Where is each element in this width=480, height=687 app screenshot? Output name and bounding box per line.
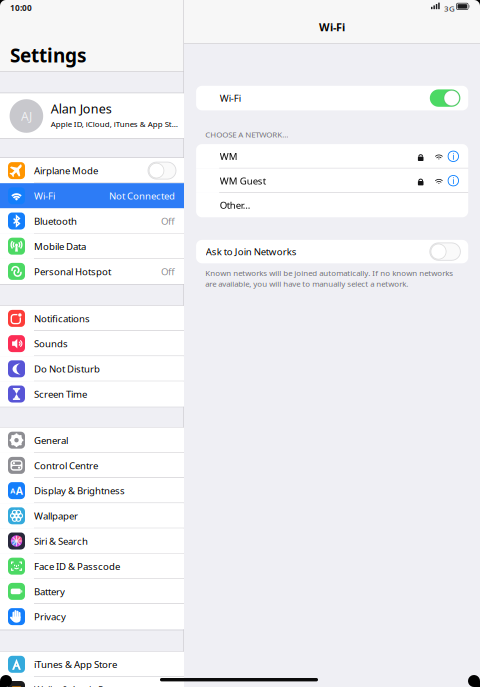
button[interactable]: Control Centre bbox=[0, 453, 184, 478]
staticText: Sounds bbox=[34, 337, 68, 350]
staticText: Wallpaper bbox=[34, 509, 78, 522]
button[interactable]: Mobile Data bbox=[0, 234, 184, 259]
button[interactable]: Ask to Join Networks bbox=[196, 240, 468, 263]
staticText: Siri & Search bbox=[34, 534, 88, 548]
staticText: Ask to Join Networks bbox=[206, 245, 297, 258]
staticText: Display & Brightness bbox=[34, 484, 125, 497]
button[interactable]: Wallpaper bbox=[0, 503, 184, 528]
staticText: Apple ID, iCloud, iTunes & App St… bbox=[51, 118, 178, 129]
button[interactable]: Privacy bbox=[0, 604, 184, 629]
button[interactable]: iTunes & App Store bbox=[0, 652, 184, 677]
staticText: Off bbox=[161, 214, 175, 228]
button[interactable]: Wi-Fi bbox=[0, 183, 184, 208]
button[interactable]: Do Not Disturb bbox=[0, 356, 184, 381]
staticText: iTunes & App Store bbox=[34, 658, 117, 671]
staticText: WM bbox=[220, 150, 238, 163]
staticText: Face ID & Passcode bbox=[34, 560, 120, 573]
staticText: Privacy bbox=[34, 610, 66, 623]
staticText: Other… bbox=[220, 199, 251, 212]
staticText: AJ bbox=[21, 108, 32, 124]
staticText: Do Not Disturb bbox=[34, 362, 100, 375]
staticText: A bbox=[16, 483, 23, 498]
staticText: Control Centre bbox=[34, 459, 98, 472]
staticText: Known networks will be joined automatica… bbox=[205, 267, 453, 289]
staticText: WM Guest bbox=[220, 174, 266, 187]
staticText: Alan Jones bbox=[51, 100, 112, 117]
button[interactable]: Wi-Fi bbox=[196, 86, 468, 110]
staticText: Settings bbox=[10, 42, 87, 68]
staticText: Notifications bbox=[34, 312, 90, 325]
staticText: Battery bbox=[34, 585, 65, 598]
button[interactable]: Siri & Search bbox=[0, 528, 184, 554]
staticText: Bluetooth bbox=[34, 214, 77, 228]
button[interactable]: WM Guest bbox=[196, 168, 468, 193]
staticText: Wi-Fi bbox=[220, 92, 241, 105]
staticText: 10:00 bbox=[10, 2, 32, 13]
button[interactable]: Other… bbox=[196, 193, 468, 217]
staticText: Not Connected bbox=[109, 189, 175, 202]
staticText: Personal Hotspot bbox=[34, 265, 111, 278]
button[interactable]: Battery bbox=[0, 579, 184, 604]
button[interactable]: Face ID & Passcode bbox=[0, 554, 184, 579]
staticText: Airplane Mode bbox=[34, 164, 98, 177]
button[interactable]: General bbox=[0, 428, 184, 453]
button[interactable]: Notifications bbox=[0, 306, 184, 331]
button[interactable]: Personal Hotspot bbox=[0, 259, 184, 284]
button[interactable]: Airplane Mode bbox=[0, 158, 184, 183]
button[interactable]: Screen Time bbox=[0, 381, 184, 407]
staticText: Wi-Fi bbox=[34, 189, 55, 202]
staticText: Screen Time bbox=[34, 387, 87, 401]
button[interactable]: A bbox=[0, 478, 184, 503]
staticText: 3G bbox=[444, 3, 455, 14]
staticText: A bbox=[10, 486, 15, 495]
button[interactable]: AJ bbox=[0, 93, 184, 138]
button[interactable]: Sounds bbox=[0, 331, 184, 356]
button[interactable]: WM bbox=[196, 144, 468, 168]
button[interactable]: Bluetooth bbox=[0, 208, 184, 234]
button[interactable]: Wallet & Apple Pay bbox=[0, 677, 184, 687]
staticText: General bbox=[34, 434, 68, 447]
staticText: Wi-Fi bbox=[319, 19, 345, 34]
staticText: CHOOSE A NETWORK… bbox=[205, 129, 288, 140]
staticText: i bbox=[452, 174, 454, 187]
staticText: i bbox=[452, 150, 454, 162]
staticText: Wallet & Apple Pay bbox=[34, 683, 114, 687]
staticText: Off bbox=[161, 265, 175, 278]
staticText: Mobile Data bbox=[34, 240, 86, 253]
